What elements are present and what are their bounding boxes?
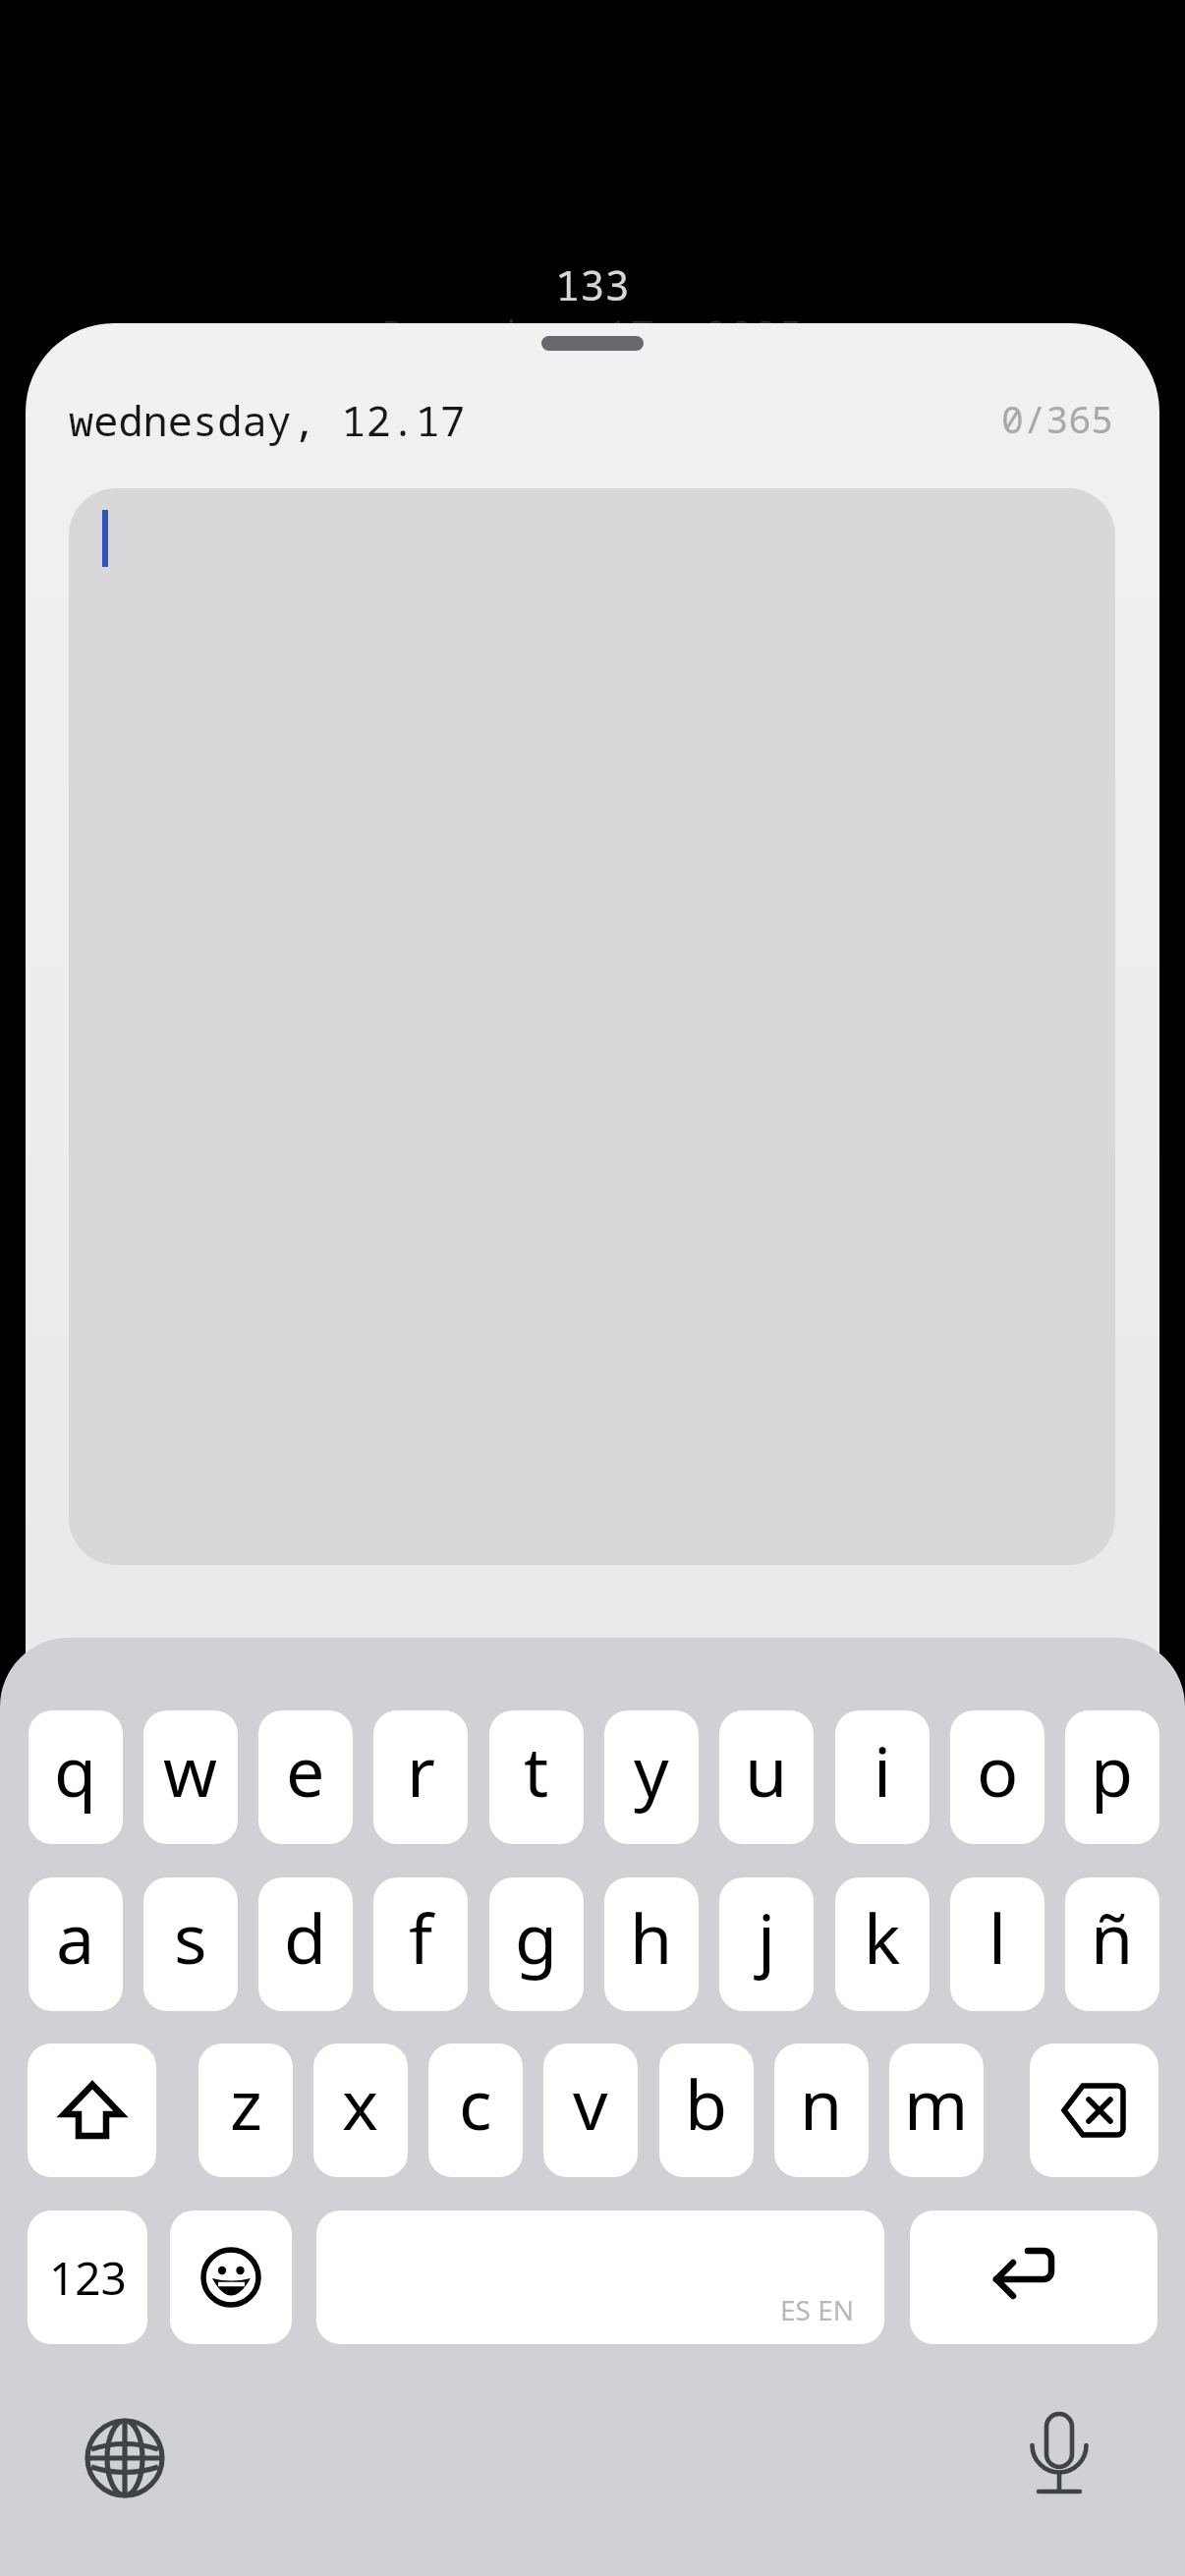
- button[interactable]: c: [428, 2044, 523, 2177]
- button[interactable]: d: [258, 1877, 353, 2011]
- button[interactable]: [28, 2044, 156, 2177]
- staticText: z: [230, 2056, 262, 2150]
- staticText: x: [342, 2056, 379, 2150]
- button[interactable]: [170, 2211, 292, 2344]
- button[interactable]: z: [198, 2044, 293, 2177]
- staticText: m: [904, 2056, 969, 2150]
- button[interactable]: v: [543, 2044, 638, 2177]
- button[interactable]: k: [835, 1877, 930, 2011]
- button[interactable]: r: [373, 1710, 468, 1844]
- staticText: c: [459, 2056, 492, 2150]
- button[interactable]: [85, 2418, 165, 2498]
- staticText: 123: [49, 2247, 127, 2309]
- button[interactable]: x: [313, 2044, 408, 2177]
- button[interactable]: [910, 2211, 1157, 2344]
- staticText: December 17, 2025: [382, 307, 804, 356]
- staticText: w: [163, 1723, 218, 1817]
- button[interactable]: g: [489, 1877, 584, 2011]
- button[interactable]: ES EN: [316, 2211, 884, 2344]
- button[interactable]: a: [28, 1877, 123, 2011]
- button[interactable]: h: [604, 1877, 699, 2011]
- staticText: h: [630, 1890, 673, 1984]
- button[interactable]: b: [659, 2044, 754, 2177]
- staticText: i: [874, 1723, 892, 1817]
- button[interactable]: w: [143, 1710, 238, 1844]
- button[interactable]: [1025, 2412, 1094, 2498]
- button[interactable]: m: [889, 2044, 984, 2177]
- staticText: t: [524, 1723, 549, 1817]
- button[interactable]: t: [489, 1710, 584, 1844]
- staticText: l: [988, 1890, 1007, 1984]
- staticText: wednesday, 12.17: [69, 392, 466, 448]
- staticText: o: [977, 1723, 1019, 1817]
- staticText: 133: [555, 256, 630, 306]
- button[interactable]: j: [719, 1877, 814, 2011]
- button[interactable]: n: [774, 2044, 869, 2177]
- staticText: p: [1091, 1723, 1134, 1817]
- button[interactable]: e: [258, 1710, 353, 1844]
- button[interactable]: [1030, 2044, 1158, 2177]
- button[interactable]: o: [950, 1710, 1044, 1844]
- button[interactable]: [69, 488, 1115, 1565]
- staticText: n: [800, 2056, 843, 2150]
- staticText: ñ: [1091, 1890, 1134, 1984]
- staticText: u: [745, 1723, 788, 1817]
- button[interactable]: i: [835, 1710, 930, 1844]
- button[interactable]: p: [1065, 1710, 1159, 1844]
- staticText: 0/365: [1001, 393, 1114, 442]
- staticText: v: [573, 2056, 608, 2150]
- button[interactable]: l: [950, 1877, 1044, 2011]
- staticText: g: [515, 1890, 558, 1984]
- staticText: y: [634, 1723, 669, 1817]
- button[interactable]: u: [719, 1710, 814, 1844]
- staticText: j: [758, 1890, 776, 1984]
- button[interactable]: ñ: [1065, 1877, 1159, 2011]
- button[interactable]: 123: [28, 2211, 147, 2344]
- button[interactable]: s: [143, 1877, 238, 2011]
- staticText: d: [284, 1890, 327, 1984]
- staticText: k: [864, 1890, 901, 1984]
- button[interactable]: q: [28, 1710, 123, 1844]
- staticText: a: [56, 1890, 95, 1984]
- staticText: b: [685, 2056, 728, 2150]
- staticText: s: [174, 1890, 207, 1984]
- staticText: ES EN: [780, 2291, 855, 2328]
- button[interactable]: f: [373, 1877, 468, 2011]
- staticText: r: [407, 1723, 435, 1817]
- staticText: f: [409, 1890, 433, 1984]
- staticText: e: [286, 1723, 325, 1817]
- button[interactable]: [541, 336, 644, 351]
- button[interactable]: y: [604, 1710, 699, 1844]
- staticText: q: [54, 1723, 97, 1817]
